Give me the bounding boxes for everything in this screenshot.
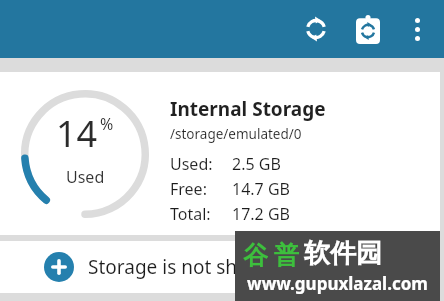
staticText: %	[100, 113, 114, 135]
button[interactable]: Storage is not sh	[0, 241, 440, 293]
staticText: /storage/emulated/0	[170, 125, 302, 143]
staticText: 14.7 GB	[232, 178, 290, 200]
staticText: 软件园	[304, 237, 382, 270]
staticText: 17.2 GB	[232, 203, 290, 225]
staticText: 14	[56, 109, 98, 158]
staticText: 2.5 GB	[232, 153, 281, 175]
button[interactable]: Refresh all	[342, 3, 394, 55]
staticText: Free:	[170, 178, 207, 200]
staticText: Used:	[170, 153, 213, 175]
staticText: 谷	[243, 240, 268, 268]
staticText: Internal Storage	[170, 96, 326, 122]
staticText: Total:	[170, 203, 211, 225]
staticText: Used	[66, 166, 105, 188]
button[interactable]: More options	[394, 6, 440, 52]
staticText: Storage is not sh	[88, 254, 238, 280]
staticText: www.gupuxlazal.com	[241, 272, 434, 295]
button[interactable]: Refresh	[290, 3, 342, 55]
button[interactable]: 14	[0, 72, 440, 235]
staticText: 普	[274, 240, 299, 268]
